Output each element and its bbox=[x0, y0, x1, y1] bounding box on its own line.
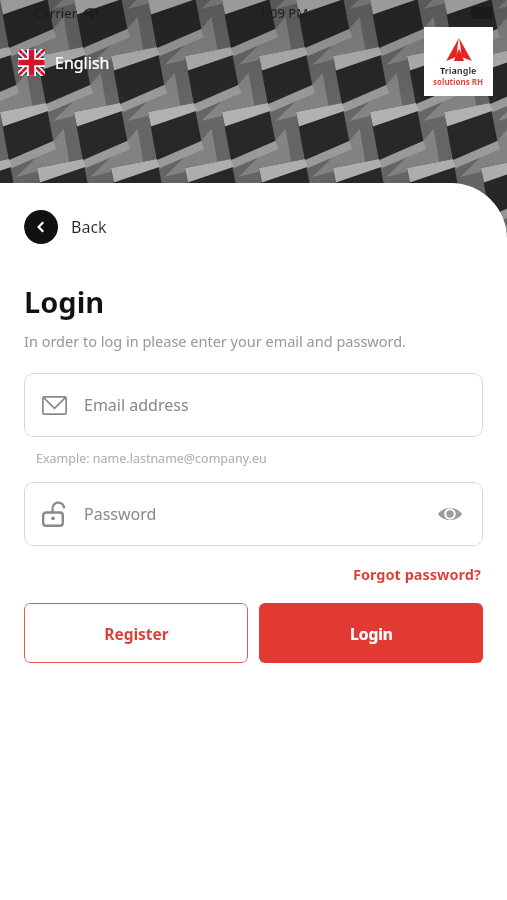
staticText: Carrier bbox=[34, 4, 78, 22]
staticText: Login bbox=[24, 282, 105, 321]
staticText: 1:09 PM bbox=[259, 4, 309, 22]
button[interactable]: Forgot password? bbox=[351, 562, 483, 586]
button[interactable]: Login bbox=[259, 603, 483, 663]
button[interactable]: English bbox=[14, 46, 114, 79]
button[interactable]: Show password bbox=[435, 499, 465, 529]
staticText: Login bbox=[350, 623, 393, 644]
staticText: Back bbox=[71, 216, 107, 238]
staticText: Email address bbox=[84, 394, 189, 416]
button[interactable]: Register bbox=[24, 603, 248, 663]
staticText: solutions RH bbox=[433, 76, 484, 87]
staticText: In order to log in please enter your ema… bbox=[24, 331, 406, 351]
staticText: Forgot password? bbox=[353, 564, 481, 584]
staticText: Example: name.lastname@company.eu bbox=[36, 450, 267, 467]
button[interactable]: Email address bbox=[24, 373, 483, 437]
staticText: Password bbox=[84, 503, 157, 525]
staticText: English bbox=[55, 52, 110, 74]
button[interactable]: Triangle solutions RH logo bbox=[424, 27, 493, 96]
button[interactable]: Password bbox=[24, 482, 483, 546]
staticText: Triangle bbox=[440, 64, 477, 76]
button[interactable]: Back bbox=[24, 207, 121, 247]
staticText: Register bbox=[104, 623, 169, 644]
